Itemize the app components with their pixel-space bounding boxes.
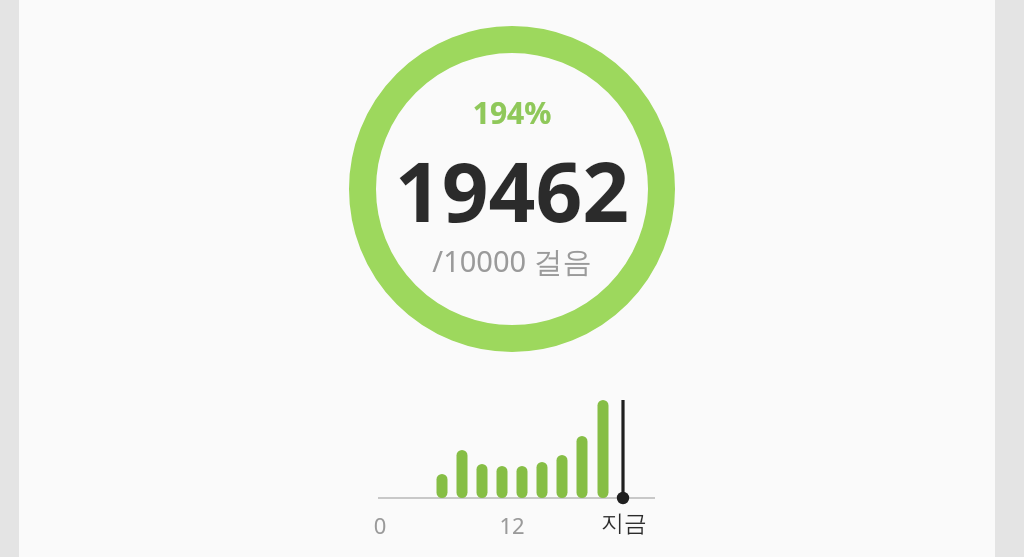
staticText: /10000 걸음 [0,241,1024,557]
staticText: 194% [0,92,1024,557]
button[interactable]: Hourly step chart [360,385,670,510]
staticText: 0 [360,510,400,557]
staticText: 19462 [0,134,1024,557]
staticText: 12 [487,510,537,557]
button[interactable] [347,24,677,354]
staticText: 지금 [588,509,660,557]
